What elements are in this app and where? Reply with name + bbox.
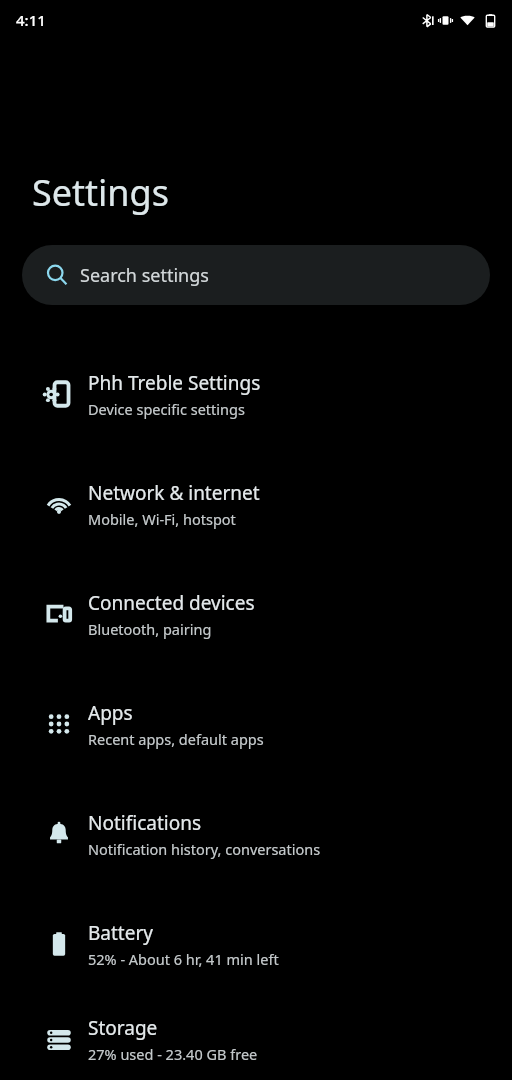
button[interactable]: Connected devices xyxy=(0,559,512,669)
staticText: Bluetooth, pairing xyxy=(88,619,212,639)
staticText: Storage xyxy=(88,1015,158,1041)
staticText: 4:11 xyxy=(16,10,46,30)
staticText: Device specific settings xyxy=(88,399,245,419)
button[interactable]: Apps xyxy=(0,669,512,779)
button[interactable]: Notifications xyxy=(0,779,512,889)
button[interactable]: Storage xyxy=(0,999,512,1080)
staticText: Notifications xyxy=(88,810,202,836)
staticText: Network & internet xyxy=(88,480,260,506)
staticText: Apps xyxy=(88,700,133,726)
staticText: Settings xyxy=(32,168,169,217)
staticText: Connected devices xyxy=(88,590,255,616)
button[interactable]: Network & internet xyxy=(0,449,512,559)
staticText: Phh Treble Settings xyxy=(88,370,261,396)
staticText: Recent apps, default apps xyxy=(88,729,264,749)
staticText: Search settings xyxy=(80,263,209,288)
button[interactable]: Phh Treble Settings xyxy=(0,339,512,449)
staticText: 27% used - 23.40 GB free xyxy=(88,1044,258,1064)
staticText: Mobile, Wi-Fi, hotspot xyxy=(88,509,236,529)
staticText: Battery xyxy=(88,920,153,946)
button[interactable]: Battery xyxy=(0,889,512,999)
staticText: Notification history, conversations xyxy=(88,839,321,859)
staticText: 52% - About 6 hr, 41 min left xyxy=(88,949,279,969)
button[interactable]: Search settings xyxy=(22,245,490,305)
